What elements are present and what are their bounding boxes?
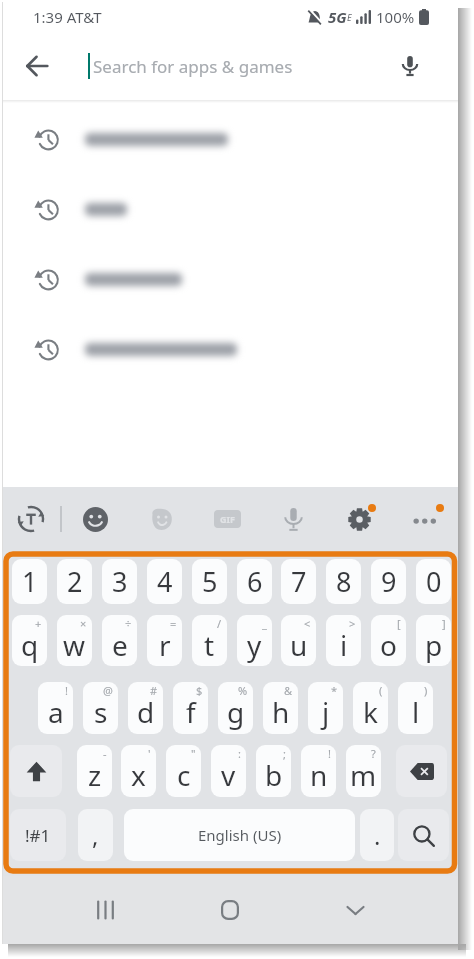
staticText: " xyxy=(191,746,196,761)
button[interactable] xyxy=(396,745,447,797)
staticText: j xyxy=(322,693,330,731)
button[interactable]: q xyxy=(12,615,47,666)
button[interactable]: h xyxy=(263,682,298,734)
button[interactable]: 0 xyxy=(416,559,451,604)
button[interactable]: f xyxy=(173,682,208,734)
staticText: ( xyxy=(379,683,383,698)
button[interactable]: 6 xyxy=(237,559,272,604)
staticText: 100% xyxy=(376,7,415,27)
button[interactable] xyxy=(392,487,458,551)
staticText: t xyxy=(204,626,215,664)
button[interactable]: x xyxy=(121,745,156,797)
staticText: d xyxy=(137,693,155,731)
staticText: & xyxy=(284,683,293,698)
staticText: ' xyxy=(148,746,151,761)
staticText: E xyxy=(347,11,352,23)
staticText: ! xyxy=(328,746,331,761)
staticText: q xyxy=(21,626,39,664)
button[interactable] xyxy=(382,38,438,94)
button[interactable]: b xyxy=(256,745,291,797)
button[interactable] xyxy=(55,876,155,944)
button[interactable]: 9 xyxy=(371,559,406,604)
staticText: v xyxy=(221,756,236,794)
button[interactable] xyxy=(2,314,458,384)
button[interactable]: g xyxy=(218,682,253,734)
staticText: 8 xyxy=(336,563,352,600)
button[interactable]: d xyxy=(128,682,163,734)
button[interactable]: t xyxy=(192,615,227,666)
button[interactable]: m xyxy=(346,745,381,797)
staticText: * xyxy=(331,683,338,698)
button[interactable]: 7 xyxy=(281,559,316,604)
button[interactable]: n xyxy=(301,745,336,797)
staticText: ? xyxy=(371,746,376,761)
button[interactable] xyxy=(180,876,280,944)
staticText: ] xyxy=(442,616,446,631)
staticText: - xyxy=(103,746,107,761)
button[interactable]: 3 xyxy=(102,559,137,604)
staticText: k xyxy=(363,693,378,731)
button[interactable] xyxy=(10,745,62,797)
staticText: 0 xyxy=(426,563,442,600)
button[interactable] xyxy=(326,487,392,551)
button[interactable] xyxy=(2,104,458,174)
button[interactable]: . xyxy=(360,809,394,861)
button[interactable]: r xyxy=(147,615,182,666)
staticText: m xyxy=(350,756,377,794)
staticText: > xyxy=(349,616,356,631)
button[interactable] xyxy=(2,487,60,551)
button[interactable]: u xyxy=(281,615,316,666)
button[interactable]: a xyxy=(38,682,73,734)
button[interactable]: l xyxy=(398,682,433,734)
button[interactable] xyxy=(6,35,68,97)
staticText: + xyxy=(35,616,42,631)
button[interactable]: c xyxy=(166,745,201,797)
staticText: @ xyxy=(103,683,113,698)
button[interactable]: Search for apps & games xyxy=(6,32,438,100)
button[interactable]: !#1 xyxy=(10,809,66,861)
staticText: # xyxy=(150,683,158,698)
button[interactable]: 4 xyxy=(147,559,182,604)
button[interactable]: j xyxy=(308,682,343,734)
button[interactable]: k xyxy=(353,682,388,734)
button[interactable] xyxy=(2,244,458,314)
button[interactable]: GIF xyxy=(194,487,260,551)
button[interactable]: s xyxy=(83,682,118,734)
staticText: English (US) xyxy=(198,825,282,845)
button[interactable]: , xyxy=(78,809,113,861)
button[interactable] xyxy=(2,174,458,244)
staticText: $ xyxy=(196,683,203,698)
button[interactable]: English (US) xyxy=(124,809,355,861)
button[interactable]: i xyxy=(326,615,361,666)
button[interactable] xyxy=(128,487,194,551)
staticText: y xyxy=(247,626,262,664)
button[interactable]: e xyxy=(102,615,137,666)
button[interactable] xyxy=(305,876,405,944)
staticText: ! xyxy=(65,683,68,698)
button[interactable]: y xyxy=(237,615,272,666)
button[interactable]: 8 xyxy=(326,559,361,604)
button[interactable]: z xyxy=(77,745,112,797)
button[interactable]: v xyxy=(211,745,246,797)
button[interactable]: 1 xyxy=(12,559,47,604)
staticText: o xyxy=(380,626,397,664)
staticText: = xyxy=(170,616,177,631)
button[interactable]: o xyxy=(371,615,406,666)
button[interactable]: w xyxy=(57,615,92,666)
staticText: . xyxy=(374,819,381,852)
staticText: c xyxy=(177,756,191,794)
staticText: 1 xyxy=(22,563,38,600)
button[interactable]: p xyxy=(416,615,451,666)
staticText: , xyxy=(92,819,99,852)
staticText: ; xyxy=(283,746,286,761)
button[interactable] xyxy=(260,487,326,551)
staticText: 2 xyxy=(67,563,83,600)
staticText: z xyxy=(88,756,102,794)
staticText: ÷ xyxy=(125,616,132,631)
button[interactable] xyxy=(398,809,449,861)
button[interactable] xyxy=(62,487,128,551)
staticText: 1:39 AT&T xyxy=(33,7,102,27)
button[interactable]: 2 xyxy=(57,559,92,604)
staticText: 5 xyxy=(202,563,218,600)
button[interactable]: 5 xyxy=(192,559,227,604)
